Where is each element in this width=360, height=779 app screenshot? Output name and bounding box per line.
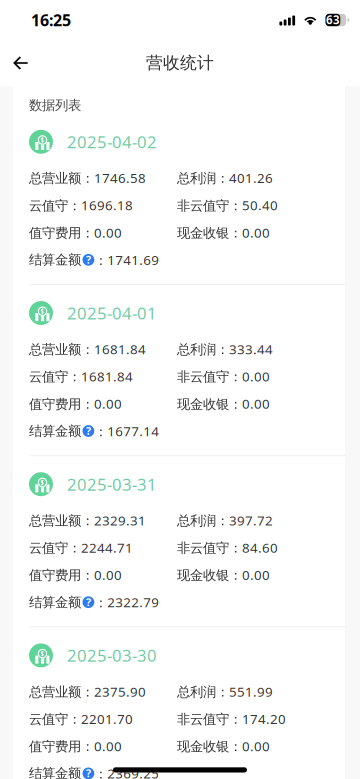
staticText: ：1741.69 — [94, 251, 159, 269]
staticText: 16:25 — [31, 9, 71, 31]
staticText: ：2369.25 — [94, 764, 159, 779]
staticText: 营收统计 — [146, 52, 214, 74]
staticText: 63 — [326, 12, 340, 28]
staticText: 值守费用：0.00 — [29, 223, 122, 242]
staticText: 结算金额 — [29, 594, 81, 611]
staticText: 2025-04-01 — [67, 302, 157, 324]
staticText: ? — [86, 424, 91, 438]
staticText: 云值守：2201.70 — [29, 710, 133, 728]
staticText: 非云值守：0.00 — [177, 367, 270, 385]
staticText: 结算金额 — [29, 765, 81, 779]
staticText: 数据列表 — [29, 97, 81, 114]
staticText: 云值守：1696.18 — [29, 196, 133, 214]
staticText: 总营业额：2329.31 — [29, 511, 146, 529]
staticText: 2025-04-02 — [67, 130, 157, 153]
staticText: 2025-03-30 — [67, 644, 157, 667]
staticText: 云值守：2244.71 — [29, 538, 133, 557]
staticText: ? — [86, 252, 91, 267]
staticText: 值守费用：0.00 — [29, 566, 122, 584]
staticText: 总利润：551.99 — [177, 682, 273, 701]
staticText: 值守费用：0.00 — [29, 395, 122, 413]
staticText: 非云值守：50.40 — [177, 196, 278, 214]
staticText: 现金收银：0.00 — [177, 566, 270, 584]
staticText: 值守费用：0.00 — [29, 737, 122, 755]
staticText: 现金收银：0.00 — [177, 395, 270, 413]
staticText: 总利润：333.44 — [177, 340, 273, 358]
staticText: 总利润：401.26 — [177, 169, 273, 187]
staticText: ：2322.79 — [94, 593, 159, 611]
staticText: 非云值守：84.60 — [177, 538, 278, 557]
button[interactable]: Back — [0, 41, 42, 85]
staticText: ? — [86, 766, 91, 779]
staticText: 2025-03-31 — [67, 473, 157, 495]
staticText: 总营业额：1681.84 — [29, 340, 146, 358]
staticText: 非云值守：174.20 — [177, 710, 286, 728]
staticText: 总利润：397.72 — [177, 511, 273, 529]
staticText: 总营业额：1746.58 — [29, 169, 146, 187]
staticText: 现金收银：0.00 — [177, 223, 270, 242]
staticText: 现金收银：0.00 — [177, 737, 270, 755]
staticText: 结算金额 — [29, 423, 81, 439]
staticText: 云值守：1681.84 — [29, 367, 133, 385]
staticText: ? — [86, 595, 91, 609]
staticText: 总营业额：2375.90 — [29, 682, 146, 701]
staticText: 结算金额 — [29, 251, 81, 268]
staticText: ：1677.14 — [94, 422, 159, 440]
